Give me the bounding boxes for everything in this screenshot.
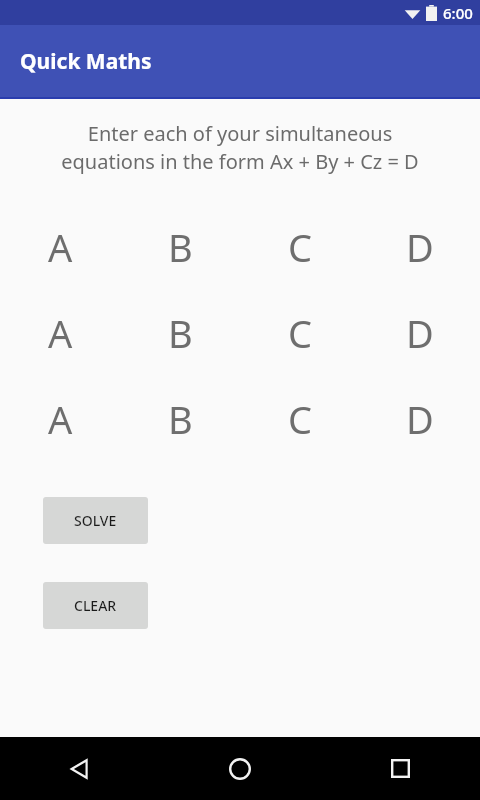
button[interactable]: C (240, 393, 360, 443)
button[interactable]: B (120, 307, 240, 357)
button[interactable]: Home (160, 737, 320, 800)
button[interactable]: D (360, 221, 480, 271)
staticText: A (48, 393, 73, 443)
button[interactable]: B (120, 393, 240, 443)
button[interactable]: Back (0, 737, 160, 800)
staticText: C (288, 307, 313, 357)
staticText: D (406, 393, 434, 443)
staticText: 6:00 (443, 3, 473, 23)
staticText: B (168, 393, 193, 443)
staticText: Enter each of your simultaneous equation… (18, 120, 462, 175)
staticText: A (48, 221, 73, 271)
staticText: D (406, 307, 434, 357)
button[interactable]: B (120, 221, 240, 271)
button[interactable]: A (0, 307, 120, 357)
staticText: B (168, 221, 193, 271)
button[interactable]: C (240, 221, 360, 271)
staticText: CLEAR (74, 596, 117, 615)
button[interactable]: D (360, 307, 480, 357)
button[interactable]: A (0, 221, 120, 271)
staticText: C (288, 393, 313, 443)
staticText: A (48, 307, 73, 357)
staticText: D (406, 221, 434, 271)
button[interactable]: CLEAR (43, 582, 148, 629)
staticText: SOLVE (74, 511, 117, 530)
staticText: Quick Maths (20, 47, 152, 76)
staticText: C (288, 221, 313, 271)
button[interactable]: D (360, 393, 480, 443)
staticText: B (168, 307, 193, 357)
button[interactable]: A (0, 393, 120, 443)
button[interactable]: C (240, 307, 360, 357)
button[interactable]: SOLVE (43, 497, 148, 544)
button[interactable]: Recent apps (320, 737, 480, 800)
